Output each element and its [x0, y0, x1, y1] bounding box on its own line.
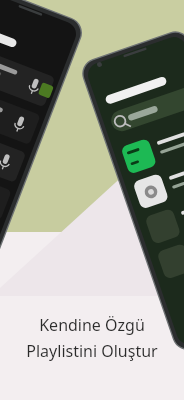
staticText: Kendine Özgü	[39, 314, 145, 336]
staticText: Playlistini Oluştur	[26, 340, 158, 362]
button[interactable]: Kendine Özgü	[10, 314, 174, 362]
